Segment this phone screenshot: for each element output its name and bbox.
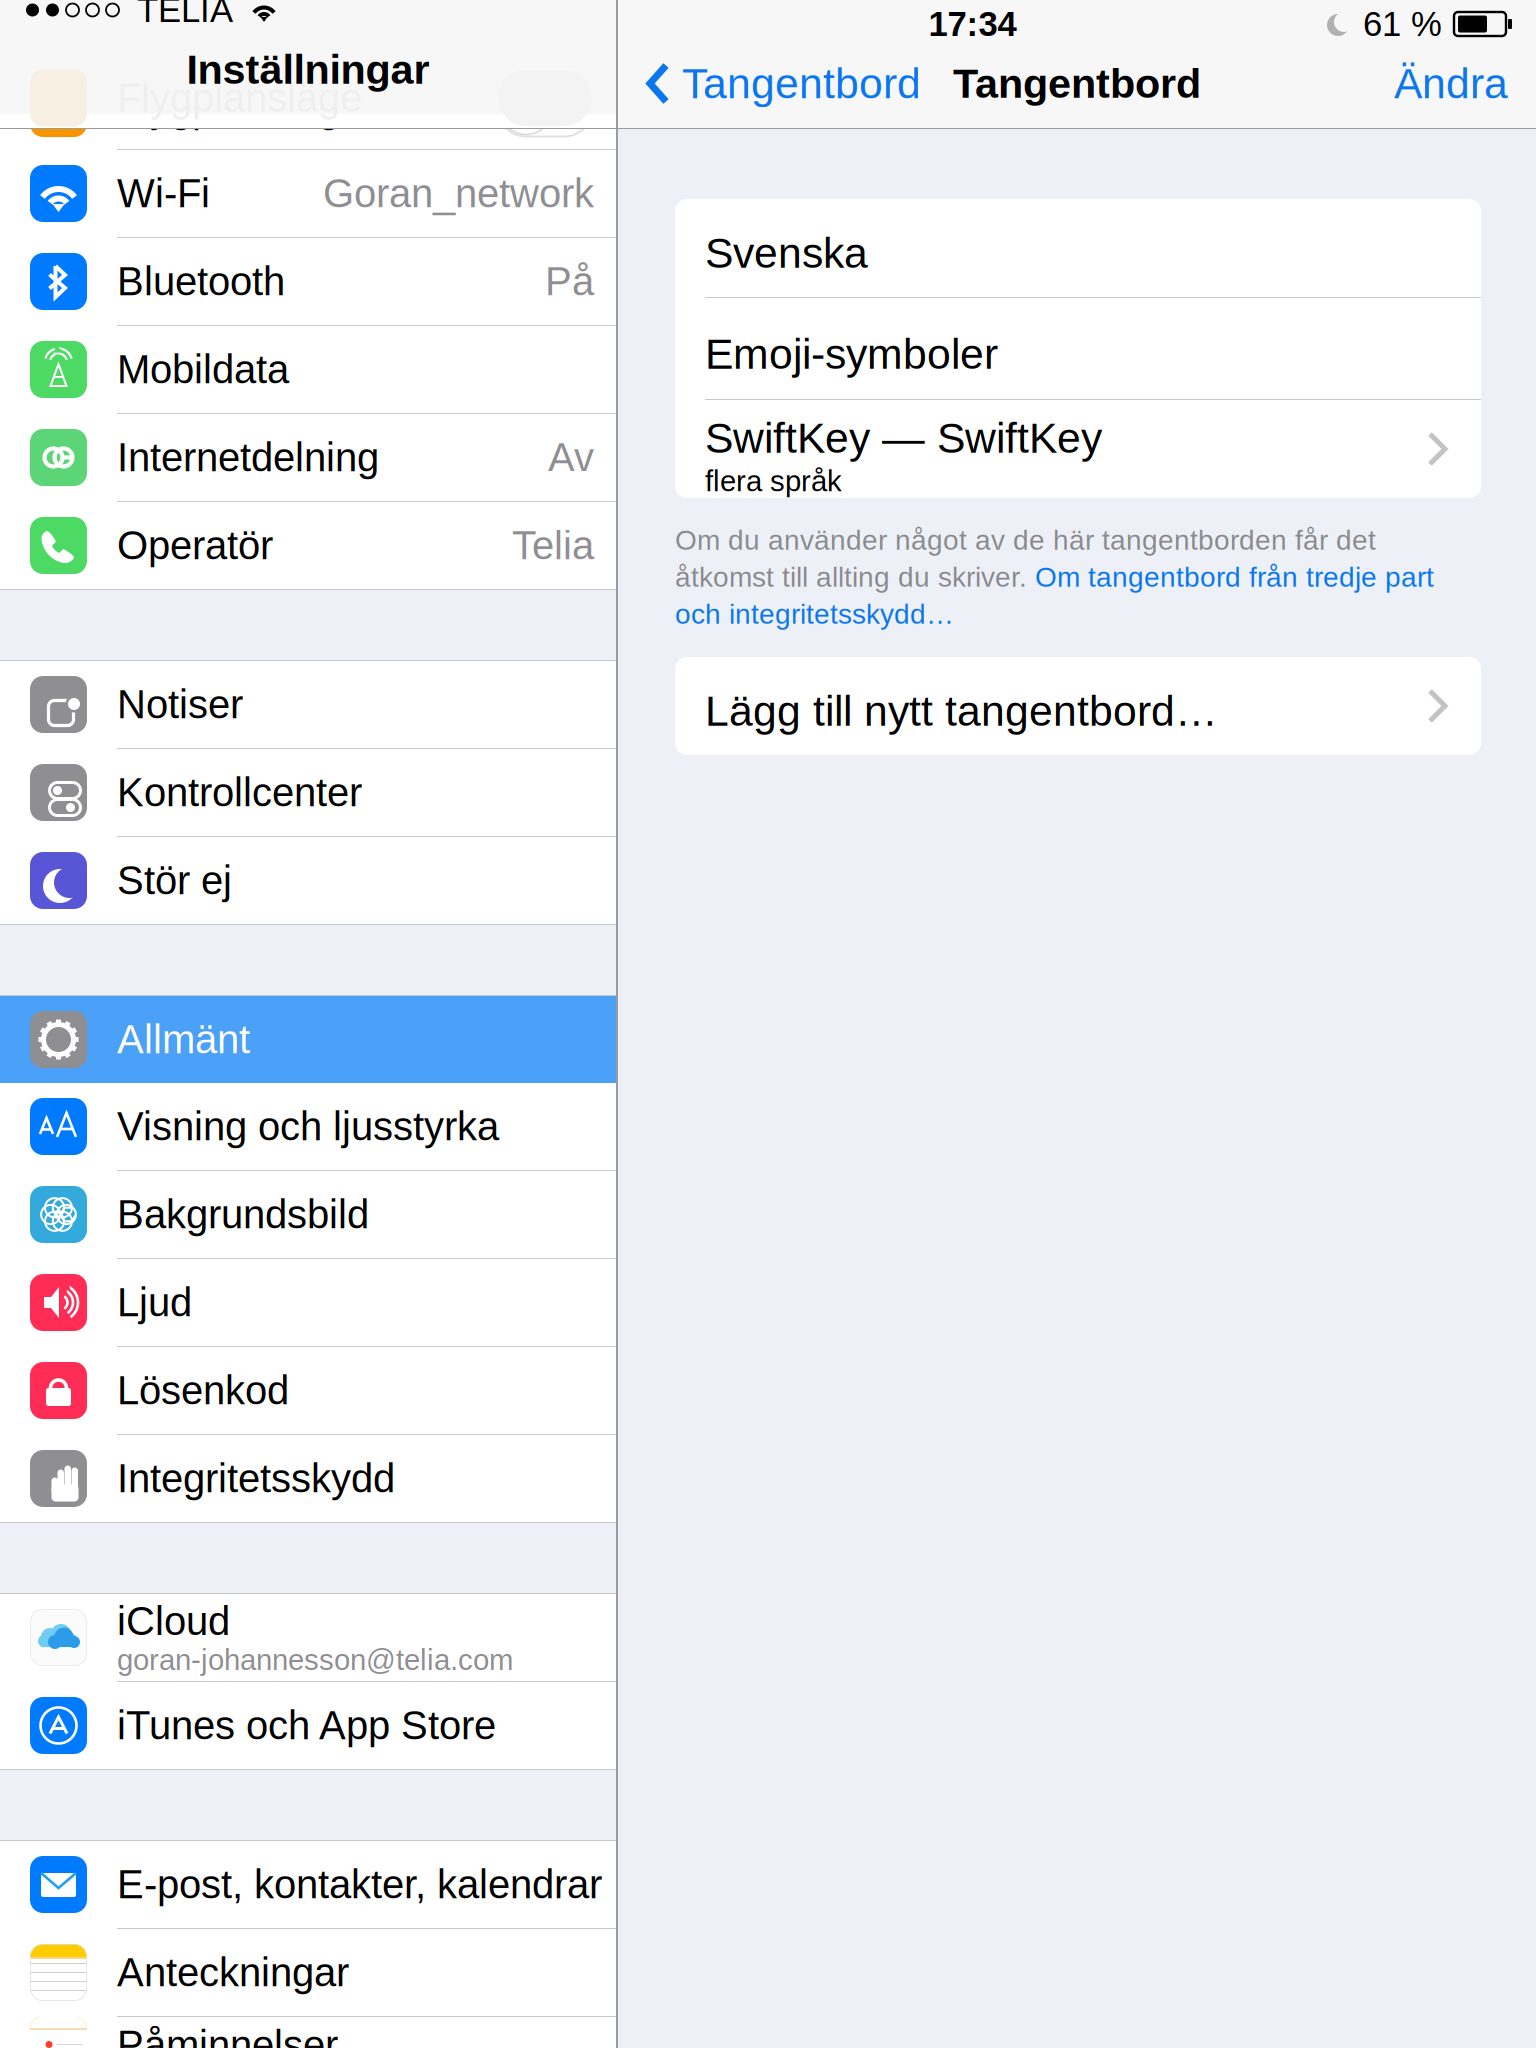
button[interactable]: E-post, kontakter, kalendrar (0, 1841, 616, 1928)
button[interactable]: Om tangentbord från tredje part (1035, 561, 1481, 593)
staticText: Lösenkod (117, 1368, 289, 1413)
staticText: Om tangentbord från tredje part (1035, 561, 1434, 593)
staticText: Påminnelser (117, 2023, 338, 2048)
staticText: Bakgrundsbild (117, 1192, 369, 1237)
staticText: 61 % (1363, 5, 1442, 43)
button[interactable]: iCloud (0, 1594, 616, 1681)
staticText: Svenska (705, 229, 868, 277)
button[interactable]: Ändra (1394, 60, 1536, 107)
button[interactable]: Svenska (675, 199, 1481, 297)
staticText: iTunes och App Store (117, 1703, 496, 1748)
staticText: På (545, 259, 594, 304)
staticText: Internetdelning (117, 435, 379, 480)
button[interactable]: Lösenkod (0, 1347, 616, 1434)
button[interactable]: Visning och ljusstyrka (0, 1083, 616, 1170)
staticText: Wi-Fi (117, 171, 210, 216)
staticText: SwiftKey — SwiftKey (705, 414, 1102, 462)
button[interactable]: Internetdelning (0, 414, 616, 501)
button[interactable]: och integritetsskydd… (675, 598, 1481, 630)
button[interactable]: Operatör (0, 502, 616, 589)
staticText: Integritetsskydd (117, 1456, 395, 1501)
button[interactable]: Lägg till nytt tangentbord… (675, 657, 1481, 755)
staticText: TELIA (137, 0, 233, 29)
staticText: Telia (512, 523, 594, 568)
staticText: Allmänt (117, 1017, 250, 1062)
button[interactable]: Bakgrundsbild (0, 1171, 616, 1258)
staticText: Ändra (1394, 60, 1508, 107)
staticText: flera språk (705, 465, 842, 497)
staticText: Stör ej (117, 858, 232, 903)
staticText: Goran_network (323, 171, 594, 216)
button[interactable]: Mobildata (0, 326, 616, 413)
staticText: Operatör (117, 523, 273, 568)
staticText: Visning och ljusstyrka (117, 1104, 499, 1149)
button[interactable]: Emoji-symboler (675, 298, 1481, 399)
staticText: goran-johannesson@telia.com (117, 1643, 513, 1676)
staticText: Mobildata (117, 347, 289, 392)
staticText: Notiser (117, 682, 243, 727)
staticText: åtkomst till allting du skriver. (675, 561, 1027, 593)
button[interactable]: Stör ej (0, 837, 616, 924)
staticText: Av (548, 435, 594, 480)
staticText: Lägg till nytt tangentbord… (705, 687, 1218, 735)
staticText: Flygplansläge (117, 86, 362, 131)
staticText: iCloud (117, 1599, 230, 1643)
button[interactable]: Wi-Fi (0, 150, 616, 237)
staticText: Tangentbord (953, 60, 1201, 107)
button[interactable]: Integritetsskydd (0, 1435, 616, 1522)
button[interactable]: Flygplansläge (0, 125, 616, 152)
button[interactable]: Bluetooth (0, 238, 616, 325)
staticText: Emoji-symboler (705, 330, 998, 378)
button[interactable]: Kontrollcenter (0, 749, 616, 836)
staticText: Inställningar (186, 46, 429, 93)
staticText: Bluetooth (117, 259, 285, 304)
staticText: Flygplansläge (117, 76, 362, 120)
staticText: Tangentbord (682, 60, 921, 107)
button[interactable]: SwiftKey — SwiftKey (675, 400, 1481, 498)
button[interactable]: Tangentbord (618, 60, 921, 107)
button[interactable]: Ljud (0, 1259, 616, 1346)
button[interactable]: Allmänt (0, 996, 616, 1083)
button[interactable]: Anteckningar (0, 1929, 616, 2016)
staticText: Om du använder något av de här tangentbo… (675, 524, 1376, 556)
staticText: E-post, kontakter, kalendrar (117, 1862, 602, 1907)
button[interactable]: iTunes och App Store (0, 1682, 616, 1769)
staticText: och integritetsskydd… (675, 598, 954, 630)
staticText: Kontrollcenter (117, 770, 362, 815)
button[interactable]: Påminnelser (0, 1985, 616, 2048)
staticText: 17:34 (928, 5, 1016, 43)
button[interactable]: Notiser (0, 661, 616, 748)
staticText: Anteckningar (117, 1950, 349, 1995)
staticText: Ljud (117, 1280, 192, 1325)
